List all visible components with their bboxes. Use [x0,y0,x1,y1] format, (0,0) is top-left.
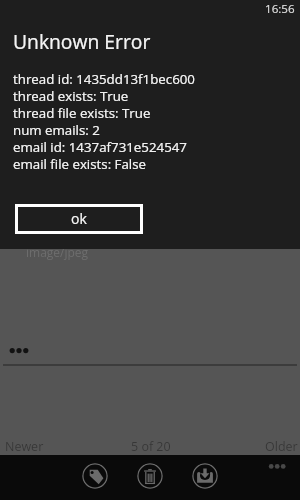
staticText: Unknown Error [13,28,151,54]
button[interactable]: Delete message [137,463,163,489]
staticText: image/jpeg [26,244,89,260]
button[interactable]: Older [265,438,298,455]
staticText: 16:56 [265,1,295,17]
button[interactable]: More options [264,457,290,473]
staticText: ok [71,209,87,228]
button[interactable]: ok [15,204,143,234]
button[interactable]: Tag message [82,463,108,489]
staticText: 5 of 20 [131,438,171,455]
button[interactable]: Newer [5,438,44,455]
button[interactable]: Show more [8,344,34,358]
staticText: thread id: 1435dd13f1bec600 thread exist… [13,70,195,173]
button[interactable]: Move message [192,463,218,489]
